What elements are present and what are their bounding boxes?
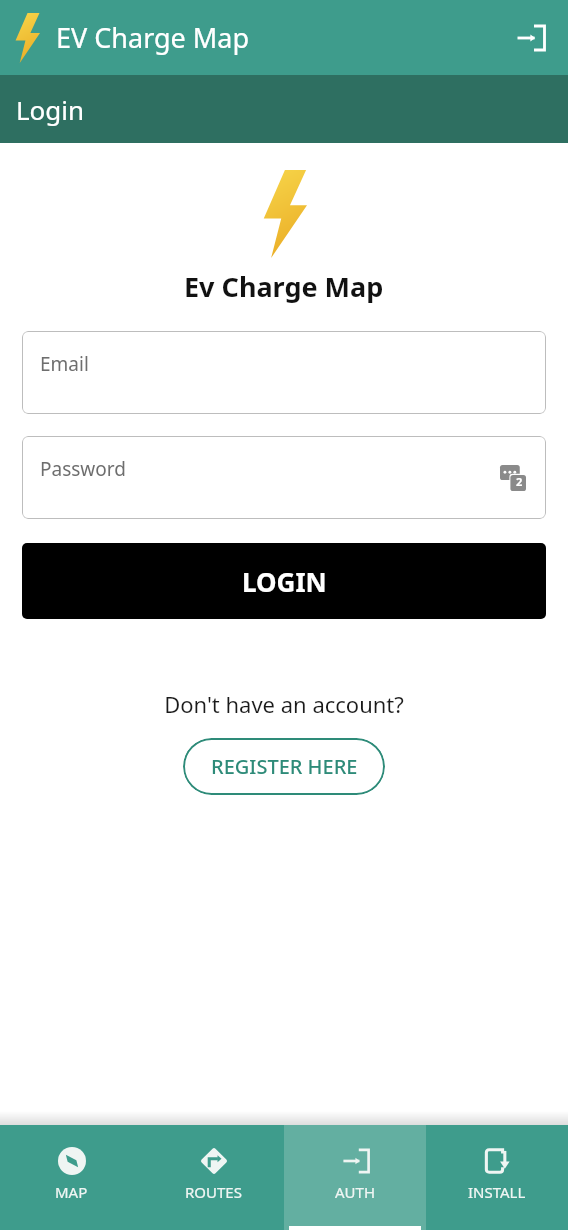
button[interactable]: Password bbox=[22, 436, 546, 519]
staticText: Email bbox=[40, 351, 89, 377]
button[interactable]: MAP bbox=[0, 1125, 142, 1230]
button[interactable]: INSTALL bbox=[426, 1125, 568, 1230]
staticText: 2 bbox=[516, 474, 523, 489]
staticText: INSTALL bbox=[468, 1182, 526, 1202]
button[interactable]: ROUTES bbox=[142, 1125, 284, 1230]
staticText: Don't have an account? bbox=[164, 689, 404, 719]
staticText: LOGIN bbox=[242, 564, 327, 599]
staticText: ROUTES bbox=[185, 1182, 242, 1202]
staticText: MAP bbox=[55, 1182, 88, 1202]
staticText: Ev Charge Map bbox=[184, 268, 384, 305]
button[interactable]: Login bbox=[508, 15, 554, 61]
button[interactable]: Password manager bbox=[496, 461, 530, 495]
staticText: AUTH bbox=[335, 1182, 376, 1202]
button[interactable]: AUTH bbox=[284, 1125, 426, 1230]
staticText: REGISTER HERE bbox=[211, 753, 358, 780]
staticText: EV Charge Map bbox=[56, 19, 250, 56]
staticText: Login bbox=[16, 92, 85, 127]
button[interactable]: Email bbox=[22, 331, 546, 414]
button[interactable]: LOGIN bbox=[22, 543, 546, 619]
staticText: Password bbox=[40, 456, 126, 482]
button[interactable]: REGISTER HERE bbox=[183, 738, 385, 795]
